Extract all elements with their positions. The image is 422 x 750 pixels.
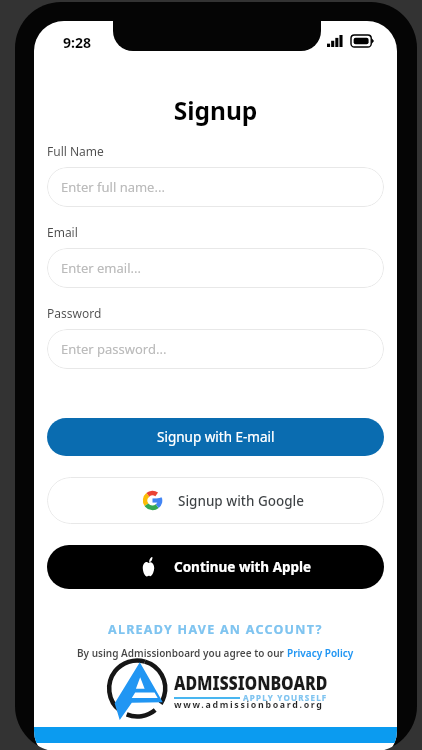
staticText: ADMISSIONBOARD [174, 669, 328, 696]
staticText: Signup with Google [178, 492, 305, 510]
staticText: Email [47, 224, 78, 240]
staticText: Password [47, 305, 102, 321]
staticText: ALREADY HAVE AN ACCOUNT? [108, 621, 323, 638]
staticText: APPLY YOURSELF [243, 692, 328, 703]
staticText: Enter email... [61, 259, 141, 277]
staticText: Enter full name... [61, 178, 165, 196]
button[interactable]: Enter full name... [47, 167, 384, 207]
button[interactable]: Enter email... [47, 248, 384, 288]
staticText: By using Admissionboard you agree to our [77, 646, 287, 660]
staticText: Full Name [47, 143, 104, 159]
staticText: Signup [34, 94, 397, 127]
staticText: Signup with E-mail [157, 428, 275, 446]
button[interactable]: Signup with E-mail [47, 418, 384, 456]
button[interactable]: Privacy Policy [287, 646, 354, 660]
staticText: Enter password... [61, 340, 167, 358]
staticText: www.admissionboard.org [174, 699, 324, 711]
staticText: 9:28 [63, 33, 91, 52]
button[interactable]: ALREADY HAVE AN ACCOUNT? [34, 621, 397, 638]
staticText: Continue with Apple [174, 558, 312, 576]
button[interactable]: Enter password... [47, 329, 384, 369]
button[interactable]: Signup with Google [47, 477, 384, 524]
button[interactable]: Continue with Apple [47, 545, 384, 589]
